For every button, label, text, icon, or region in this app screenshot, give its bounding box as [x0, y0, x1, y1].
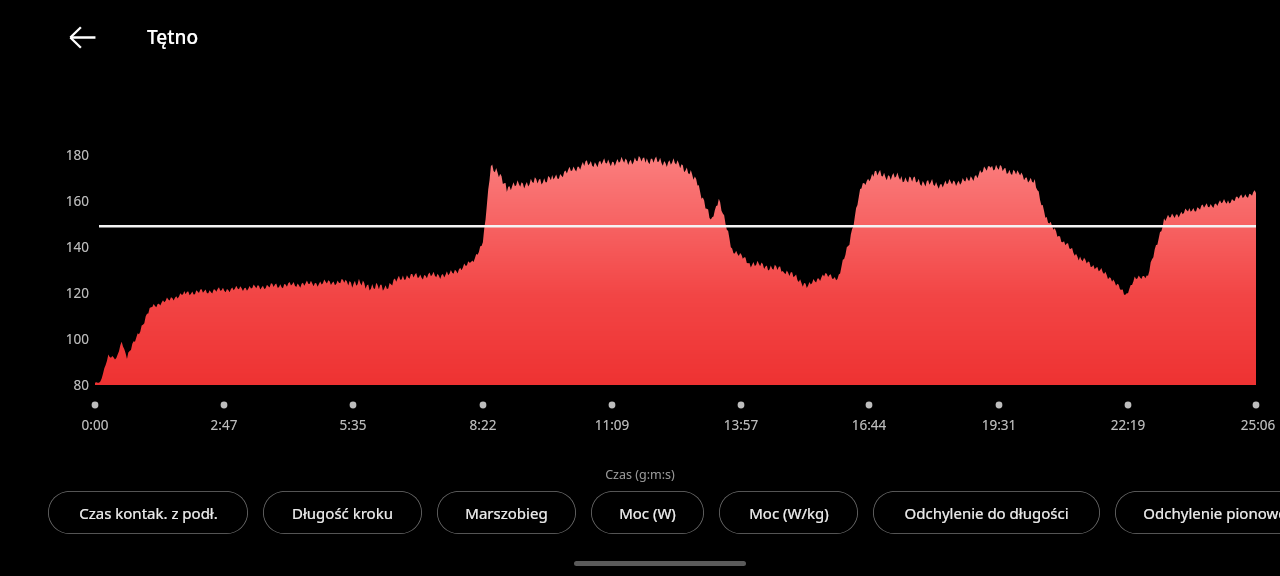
button[interactable]: Odchylenie do długości [873, 491, 1100, 534]
staticText: 16:44 [829, 416, 909, 434]
button[interactable]: Odchylenie pionowe [1115, 491, 1280, 534]
button[interactable]: Back [58, 13, 106, 61]
staticText: Moc (W/kg) [749, 503, 829, 523]
staticText: 160 [55, 192, 89, 210]
staticText: Czas (g:m:s) [600, 466, 680, 483]
button[interactable]: Długość kroku [263, 491, 422, 534]
button[interactable]: Czas kontak. z podł. [48, 491, 248, 534]
button[interactable]: Moc (W/kg) [719, 491, 858, 534]
staticText: Długość kroku [292, 503, 393, 523]
staticText: 13:57 [701, 416, 781, 434]
staticText: 180 [55, 146, 89, 164]
staticText: Marszobieg [465, 503, 548, 523]
staticText: Moc (W) [619, 503, 676, 523]
staticText: 140 [55, 238, 89, 256]
staticText: Czas kontak. z podł. [79, 503, 218, 523]
staticText: 120 [55, 284, 89, 302]
staticText: 0:00 [55, 416, 135, 434]
staticText: 8:22 [443, 416, 523, 434]
staticText: 5:35 [313, 416, 393, 434]
staticText: 25:06 [1218, 416, 1280, 434]
button[interactable]: Moc (W) [591, 491, 704, 534]
staticText: 100 [55, 330, 89, 348]
button[interactable]: Marszobieg [437, 491, 576, 534]
staticText: Odchylenie pionowe [1143, 503, 1280, 523]
staticText: 80 [55, 376, 89, 394]
staticText: Odchylenie do długości [904, 503, 1069, 523]
staticText: 22:19 [1088, 416, 1168, 434]
staticText: 19:31 [959, 416, 1039, 434]
staticText: 2:47 [184, 416, 264, 434]
staticText: Tętno [147, 24, 199, 50]
staticText: 11:09 [572, 416, 652, 434]
